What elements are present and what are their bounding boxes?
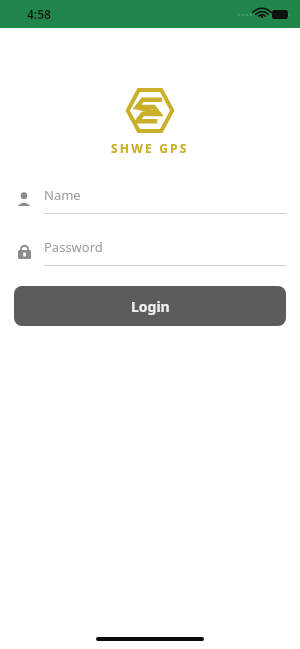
staticText: Login [131, 297, 170, 316]
staticText: Name [44, 186, 81, 204]
button[interactable]: Login [14, 286, 286, 326]
staticText: Password [44, 238, 103, 256]
button[interactable]: Name [14, 186, 286, 214]
other: Password [14, 238, 34, 264]
button[interactable]: Password [14, 238, 286, 266]
staticText: 4:58 [27, 6, 51, 22]
other: Name [14, 186, 34, 212]
staticText: SHWE GPS [111, 140, 189, 156]
